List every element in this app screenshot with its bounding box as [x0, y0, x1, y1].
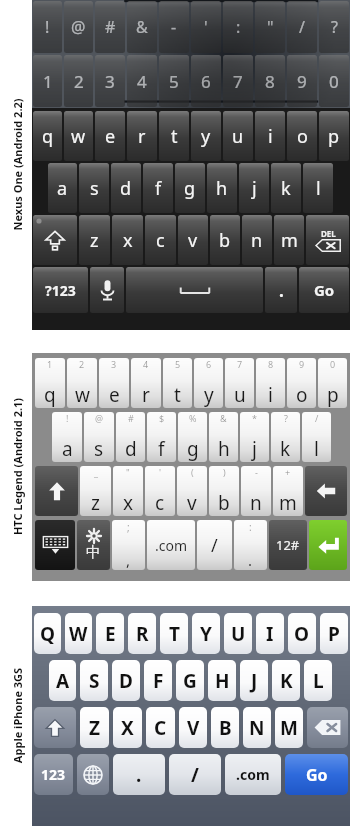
- button[interactable]: &: [127, 1, 157, 53]
- button[interactable]: B: [211, 707, 239, 748]
- button[interactable]: ': [191, 1, 221, 53]
- button[interactable]: m: [274, 215, 304, 265]
- button[interactable]: 123: [34, 754, 73, 795]
- button[interactable]: /: [287, 1, 317, 53]
- button[interactable]: @: [84, 412, 114, 462]
- button[interactable]: s: [79, 163, 109, 213]
- button[interactable]: D: [112, 660, 140, 701]
- button[interactable]: 12#: [269, 520, 307, 570]
- button[interactable]: h: [207, 163, 237, 213]
- button[interactable]: e: [95, 111, 125, 161]
- button[interactable]: P: [320, 613, 348, 654]
- button[interactable]: Y: [192, 613, 220, 654]
- button[interactable]: W: [65, 613, 92, 654]
- button[interactable]: Backspace: [307, 707, 348, 748]
- button[interactable]: Hide keyboard: [35, 520, 75, 570]
- button[interactable]: c: [145, 215, 176, 265]
- button[interactable]: A: [49, 660, 76, 701]
- button[interactable]: Z: [80, 707, 109, 748]
- button[interactable]: j: [239, 163, 269, 213]
- button[interactable]: i: [255, 111, 285, 161]
- button[interactable]: 9: [287, 358, 316, 408]
- button[interactable]: !: [52, 412, 82, 462]
- button[interactable]: Enter: [309, 520, 347, 570]
- button[interactable]: C: [146, 707, 175, 748]
- button[interactable]: Shift: [35, 466, 78, 516]
- button[interactable]: #: [116, 412, 145, 462]
- button[interactable]: Space: [126, 267, 263, 313]
- button[interactable]: 1: [33, 55, 62, 107]
- button[interactable]: J: [240, 660, 268, 701]
- button[interactable]: 5: [163, 358, 192, 408]
- button[interactable]: 6: [191, 55, 221, 107]
- button[interactable]: +: [273, 466, 303, 516]
- button[interactable]: a: [48, 163, 77, 213]
- button[interactable]: 4: [127, 55, 157, 107]
- button[interactable]: ?: [319, 1, 349, 53]
- button[interactable]: L: [304, 660, 332, 701]
- button[interactable]: $: [147, 412, 176, 462]
- button[interactable]: 0: [318, 358, 347, 408]
- button[interactable]: k: [271, 163, 301, 213]
- button[interactable]: .: [265, 267, 297, 313]
- button[interactable]: ): [209, 466, 239, 516]
- button[interactable]: -: [241, 466, 271, 516]
- button[interactable]: ": [113, 466, 143, 516]
- button[interactable]: Shift: [34, 707, 76, 748]
- button[interactable]: R: [128, 613, 156, 654]
- button[interactable]: H: [208, 660, 236, 701]
- button[interactable]: U: [224, 613, 252, 654]
- button[interactable]: E: [96, 613, 124, 654]
- button[interactable]: _: [80, 466, 111, 516]
- button[interactable]: /: [169, 754, 221, 795]
- button[interactable]: 8: [255, 55, 285, 107]
- button[interactable]: 9: [287, 55, 317, 107]
- button[interactable]: g: [175, 163, 205, 213]
- button[interactable]: T: [160, 613, 188, 654]
- button[interactable]: 2: [64, 55, 93, 107]
- button[interactable]: 2: [67, 358, 97, 408]
- button[interactable]: w: [64, 111, 93, 161]
- button[interactable]: /: [302, 412, 331, 462]
- button[interactable]: (: [177, 466, 207, 516]
- button[interactable]: ?123: [33, 267, 88, 313]
- button[interactable]: 8: [256, 358, 285, 408]
- button[interactable]: l: [303, 163, 333, 213]
- button[interactable]: S: [80, 660, 108, 701]
- button[interactable]: x: [112, 215, 143, 265]
- button[interactable]: Input language: [77, 520, 110, 570]
- button[interactable]: -: [159, 1, 189, 53]
- button[interactable]: .com: [225, 754, 281, 795]
- button[interactable]: 3: [95, 55, 125, 107]
- button[interactable]: Delete: [306, 215, 349, 265]
- button[interactable]: .: [113, 754, 165, 795]
- button[interactable]: @: [64, 1, 93, 53]
- button[interactable]: ": [255, 1, 285, 53]
- button[interactable]: I: [256, 613, 284, 654]
- button[interactable]: ': [145, 466, 175, 516]
- button[interactable]: Voice input: [90, 267, 124, 313]
- button[interactable]: F: [144, 660, 172, 701]
- button[interactable]: o: [287, 111, 317, 161]
- button[interactable]: %: [178, 412, 207, 462]
- button[interactable]: .com: [147, 520, 195, 570]
- button[interactable]: 6: [194, 358, 223, 408]
- button[interactable]: 3: [99, 358, 129, 408]
- button[interactable]: O: [288, 613, 316, 654]
- button[interactable]: X: [113, 707, 142, 748]
- button[interactable]: :: [223, 1, 253, 53]
- button[interactable]: 7: [223, 55, 253, 107]
- button[interactable]: ;: [112, 520, 145, 570]
- button[interactable]: ?: [271, 412, 300, 462]
- button[interactable]: *: [240, 412, 269, 462]
- button[interactable]: K: [272, 660, 300, 701]
- button[interactable]: r: [127, 111, 157, 161]
- button[interactable]: 1: [35, 358, 65, 408]
- button[interactable]: n: [242, 215, 272, 265]
- button[interactable]: t: [159, 111, 189, 161]
- button[interactable]: Q: [34, 613, 61, 654]
- button[interactable]: V: [179, 707, 207, 748]
- button[interactable]: Go: [299, 267, 349, 313]
- button[interactable]: 7: [225, 358, 254, 408]
- button[interactable]: :: [234, 520, 267, 570]
